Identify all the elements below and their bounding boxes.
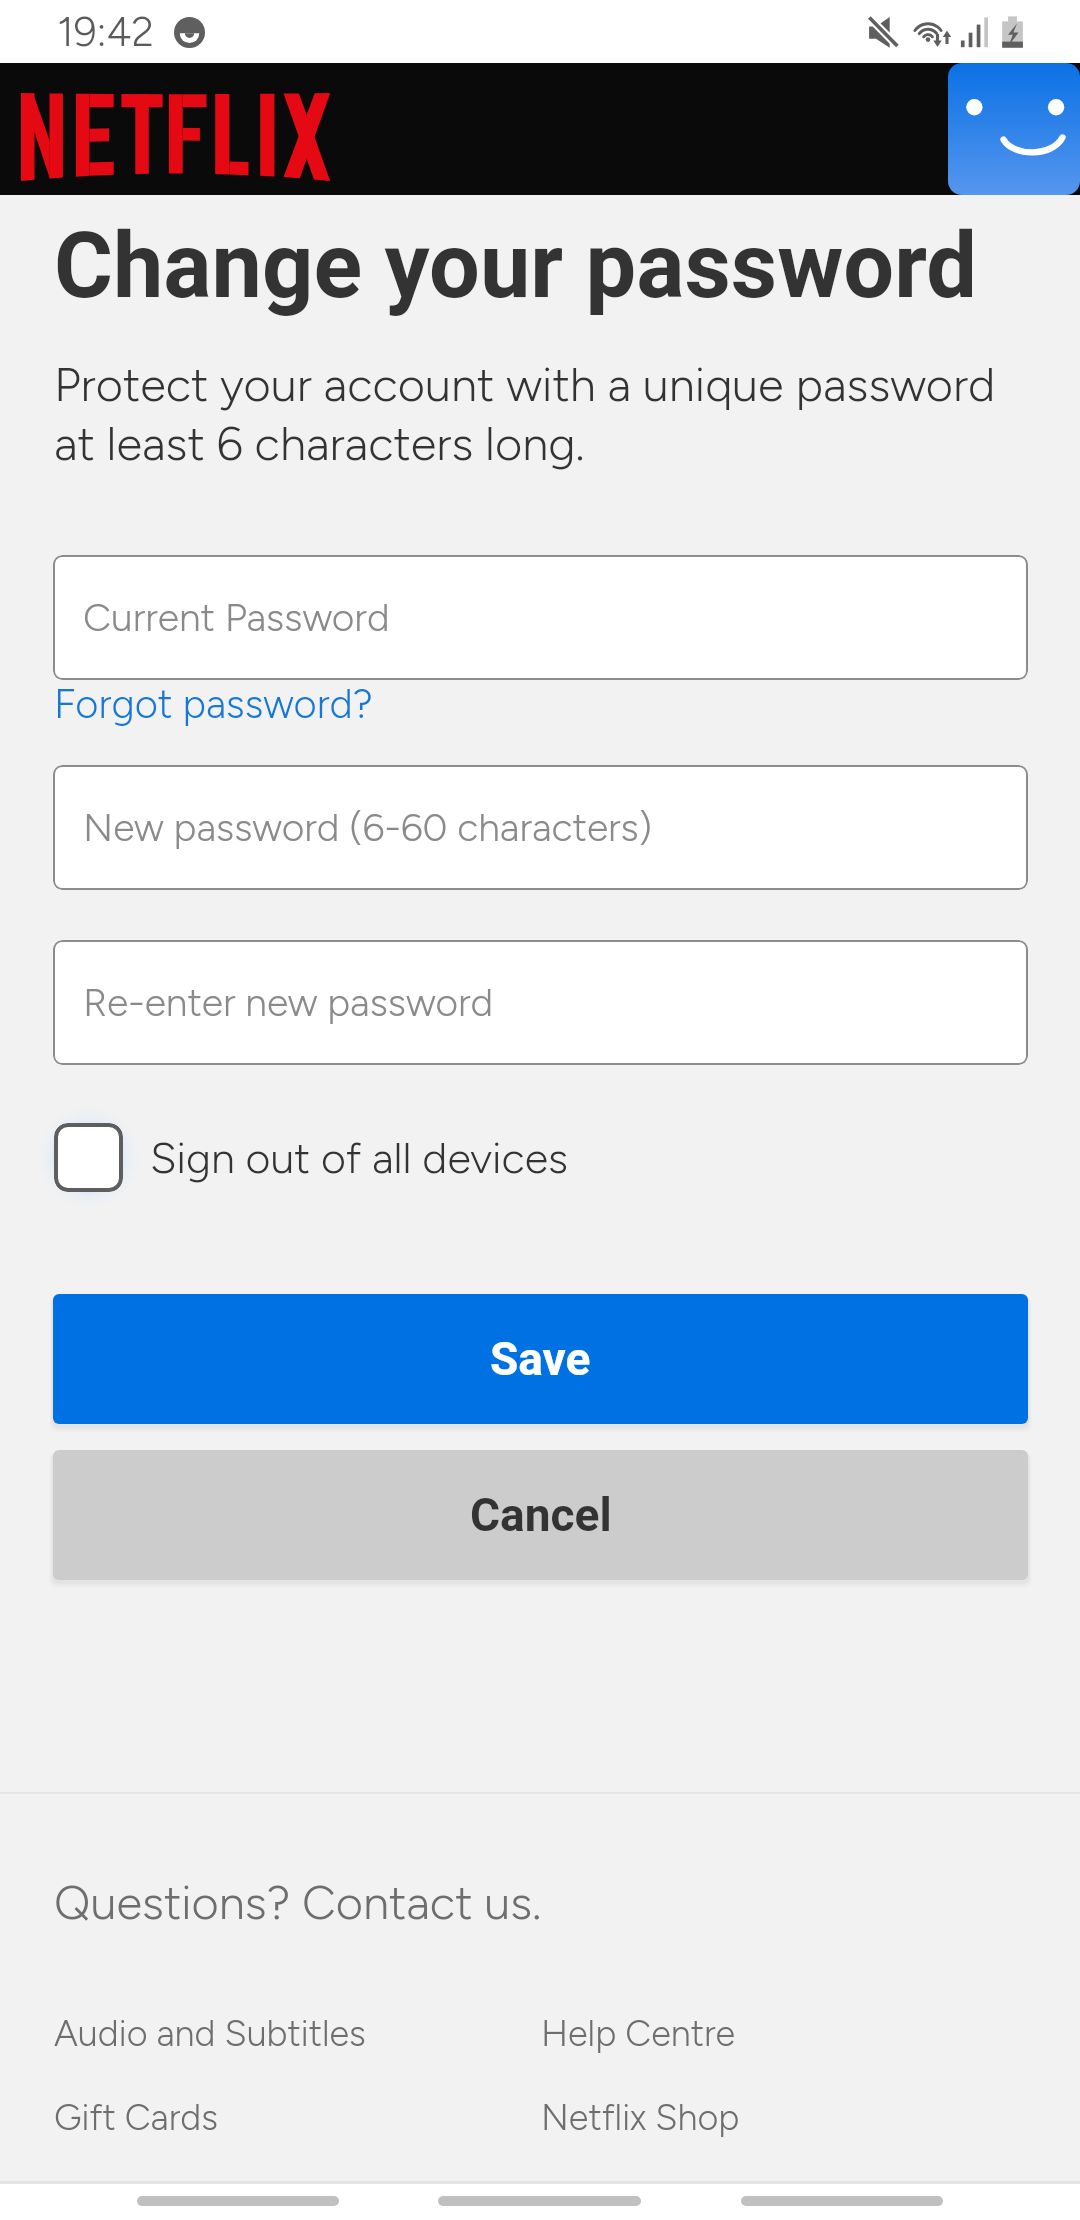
button[interactable]: Save [53,1294,1028,1424]
staticText: Current Password [83,594,390,641]
staticText: Help Centre [541,2012,736,2055]
staticText: Cancel [470,1488,612,1542]
staticText: Forgot password? [54,680,373,728]
button[interactable]: Current Password [53,555,1028,680]
button[interactable]: Profile [948,63,1080,195]
button[interactable]: Netflix Shop [541,2096,740,2139]
button[interactable]: Help Centre [541,2012,736,2055]
staticText: Sign out of all devices [150,1132,569,1184]
button[interactable]: Recent apps [741,2196,943,2206]
button[interactable]: Sign out of all devices [38,1107,569,1208]
staticText: Gift Cards [54,2096,218,2139]
staticText: New password (6-60 characters) [83,804,653,851]
staticText: Questions? Contact us. [54,1874,542,1930]
button[interactable]: Re-enter new password [53,940,1028,1065]
button[interactable]: Audio and Subtitles [54,2012,366,2055]
button[interactable]: Gift Cards [54,2096,218,2139]
button[interactable]: Questions? Contact us. [54,1874,542,1930]
staticText: 19:42 [57,7,155,56]
staticText: Re-enter new password [83,979,494,1026]
staticText: Change your password [54,214,977,319]
staticText: Protect your account with a unique passw… [54,356,996,472]
button[interactable]: Home [438,2196,641,2206]
button[interactable]: Back [137,2196,339,2206]
staticText: Audio and Subtitles [54,2012,366,2055]
button[interactable]: Forgot password? [54,680,373,728]
button[interactable]: Cancel [53,1450,1028,1580]
staticText: Netflix Shop [541,2096,740,2139]
staticText: Save [490,1332,591,1386]
button[interactable]: New password (6-60 characters) [53,765,1028,890]
